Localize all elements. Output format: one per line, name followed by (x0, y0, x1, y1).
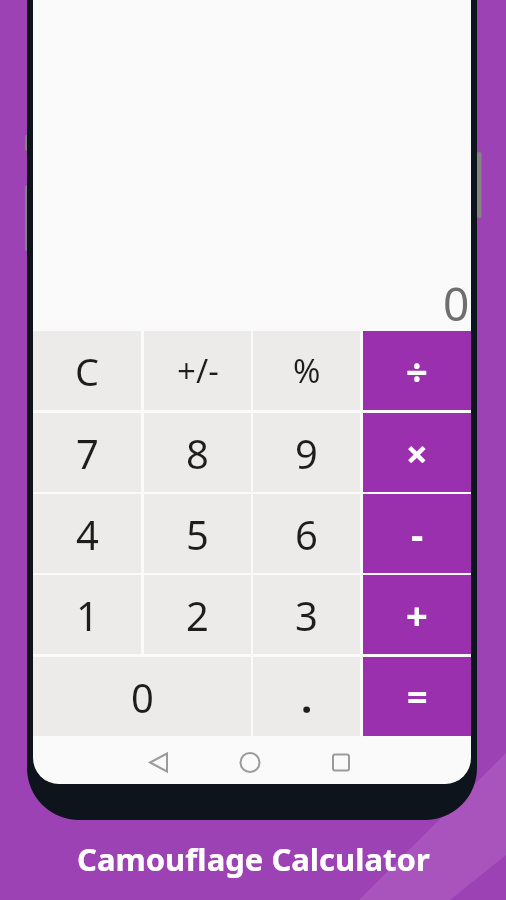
button[interactable]: % (253, 331, 360, 410)
staticText: 4 (76, 507, 99, 561)
button[interactable]: 3 (253, 575, 360, 654)
button[interactable]: 4 (33, 494, 141, 573)
staticText: = (407, 672, 428, 721)
staticText: 7 (76, 426, 99, 480)
button[interactable]: 0 (33, 657, 251, 736)
button[interactable]: C (33, 331, 141, 410)
staticText: Camouflage Calculator (77, 838, 430, 880)
staticText: 6 (295, 507, 318, 561)
staticText: C (75, 345, 100, 397)
staticText: - (411, 508, 424, 560)
staticText: ÷ (406, 345, 428, 397)
staticText: + (406, 589, 428, 641)
button[interactable]: × (363, 413, 471, 492)
staticText: +/- (177, 348, 219, 393)
staticText: 3 (295, 588, 318, 642)
staticText: % (293, 348, 321, 393)
staticText: 0 (443, 272, 470, 328)
button[interactable]: +/- (144, 331, 251, 410)
staticText: 5 (186, 507, 209, 561)
button[interactable]: 6 (253, 494, 360, 573)
staticText: . (301, 670, 313, 724)
button[interactable]: 9 (253, 413, 360, 492)
staticText: 0 (131, 670, 154, 724)
button[interactable]: - (363, 494, 471, 573)
staticText: 8 (186, 426, 209, 480)
button[interactable]: + (363, 575, 471, 654)
button[interactable]: . (253, 657, 360, 736)
button[interactable]: ÷ (363, 331, 471, 410)
button[interactable]: 5 (144, 494, 251, 573)
staticText: 9 (295, 426, 318, 480)
staticText: 1 (76, 588, 99, 642)
button[interactable]: 1 (33, 575, 141, 654)
button[interactable]: 7 (33, 413, 141, 492)
button[interactable]: 2 (144, 575, 251, 654)
button[interactable]: 8 (144, 413, 251, 492)
staticText: × (406, 427, 428, 479)
button[interactable]: = (363, 657, 471, 736)
staticText: 2 (186, 588, 209, 642)
